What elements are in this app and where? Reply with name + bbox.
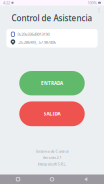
button[interactable]: ENTRADA — [19, 71, 85, 95]
button[interactable]: Back — [69, 174, 103, 184]
staticText: -25.286909, -57.987406 — [18, 40, 56, 45]
staticText: Sistema de Control — [35, 149, 68, 154]
staticText: ENTRADA — [41, 80, 63, 86]
button[interactable]: SALIDA — [19, 101, 85, 126]
staticText: Integralsoft S.R.L. — [37, 161, 66, 166]
staticText: Versión 2.1 — [42, 155, 61, 160]
button[interactable]: More options — [94, 6, 103, 15]
button[interactable]: Recents — [1, 174, 35, 184]
staticText: SALIDA — [43, 111, 60, 117]
staticText: 100% — [88, 0, 97, 5]
button[interactable]: Home — [35, 174, 69, 184]
staticText: 0c20e336d9013190 — [18, 32, 50, 37]
staticText: 4:22 — [3, 0, 10, 5]
staticText: Control de Asistencia — [11, 13, 92, 23]
